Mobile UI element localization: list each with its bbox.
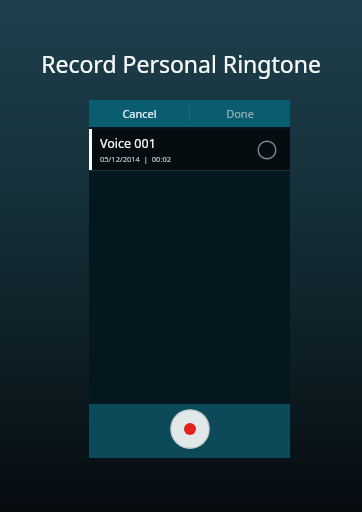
staticText: Record Personal Ringtone — [0, 48, 362, 79]
button[interactable]: Voice 001 — [89, 129, 290, 170]
button[interactable]: Record — [170, 409, 210, 449]
button[interactable]: Cancel — [89, 100, 189, 127]
staticText: Done — [226, 106, 254, 121]
staticText: Cancel — [122, 106, 157, 121]
button[interactable]: Done — [190, 100, 290, 127]
staticText: 05/12/2014 | 00:02 — [100, 154, 172, 164]
button[interactable]: Select Voice 001 — [257, 140, 277, 160]
staticText: Voice 001 — [100, 135, 156, 152]
